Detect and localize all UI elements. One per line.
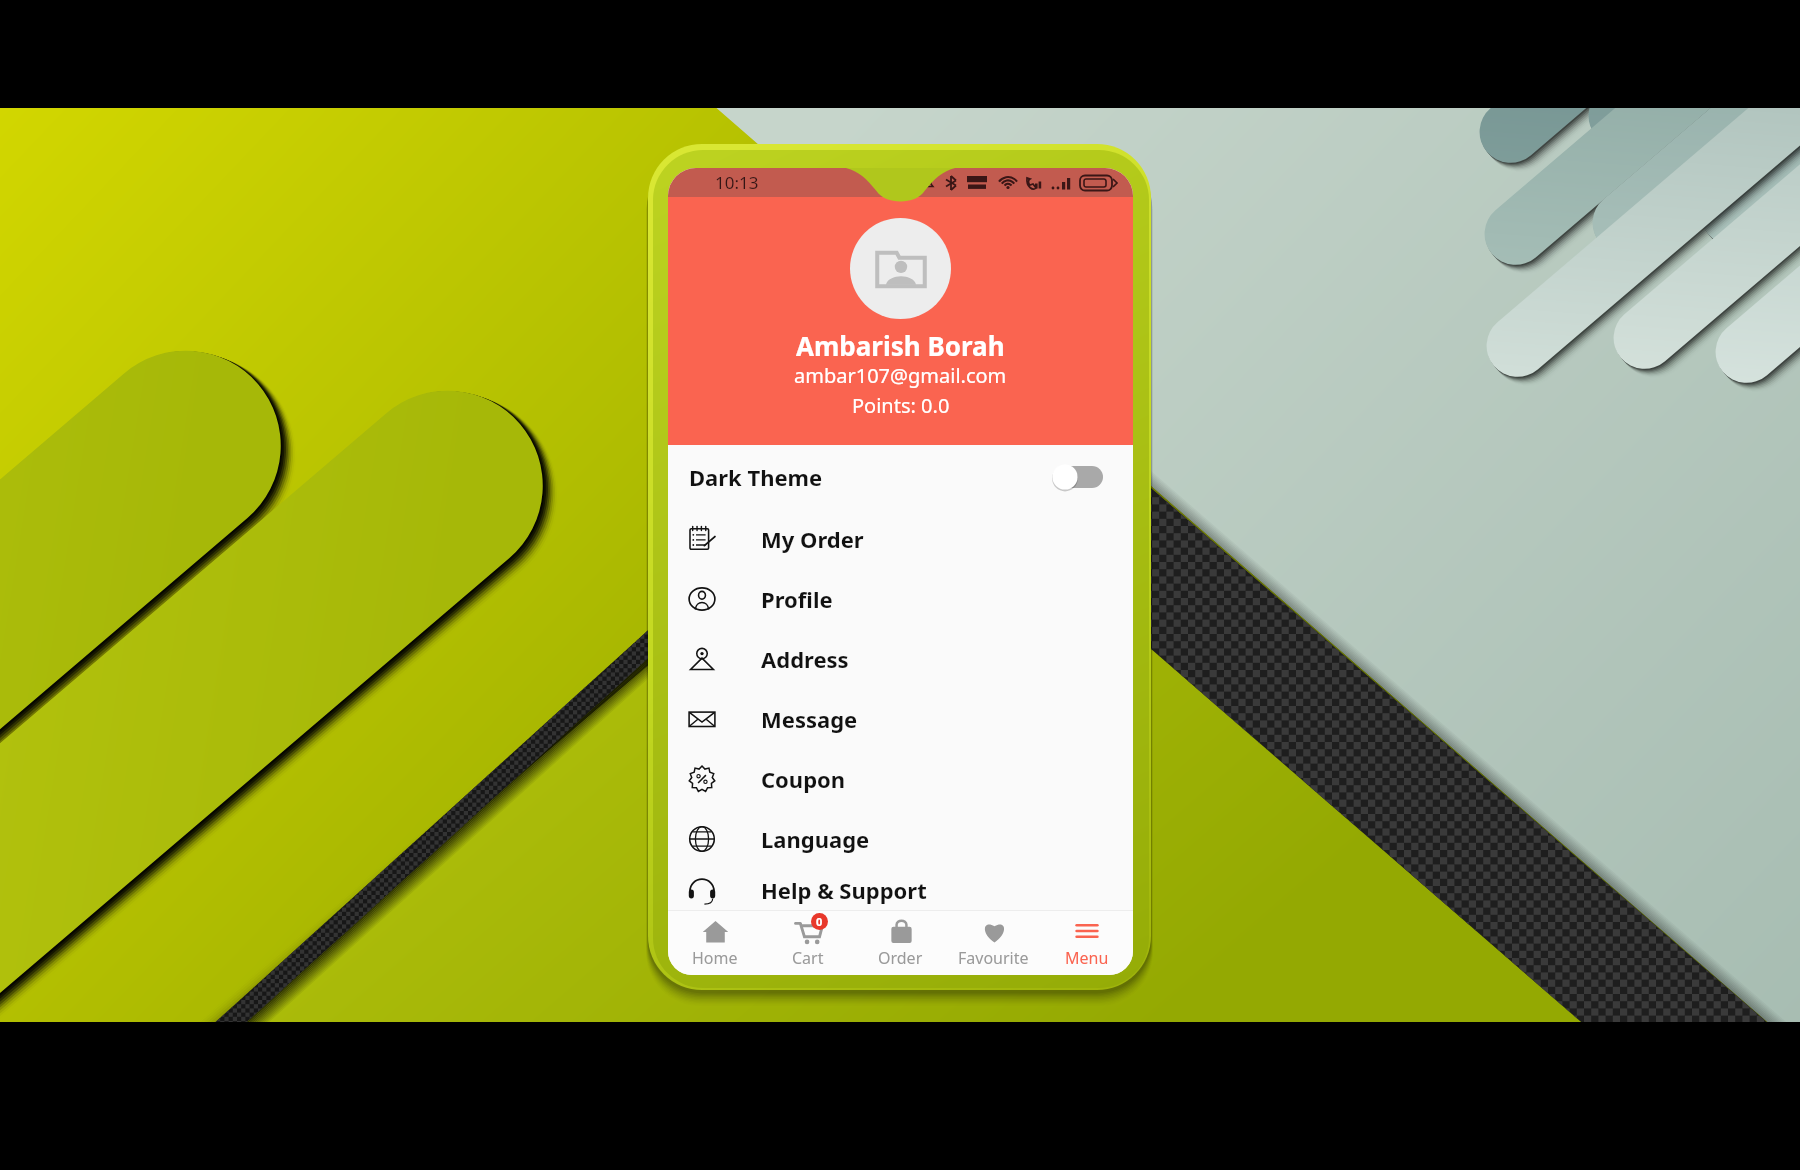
button[interactable]: 0 <box>761 910 854 975</box>
staticText: Cart <box>792 947 824 969</box>
staticText: Language <box>761 824 870 854</box>
staticText: Home <box>692 947 738 969</box>
button[interactable]: Home <box>668 910 761 975</box>
button[interactable]: Language <box>668 809 1133 869</box>
staticText: Points: 0.0 <box>852 392 950 419</box>
staticText: Menu <box>1065 947 1109 969</box>
staticText: 10:13 <box>715 171 759 194</box>
staticText: Order <box>878 947 923 969</box>
staticText: Message <box>761 704 858 734</box>
button[interactable]: Dark Theme <box>668 445 1133 509</box>
button[interactable]: Order <box>854 910 947 975</box>
button[interactable]: Profile <box>668 569 1133 629</box>
staticText: Dark Theme <box>689 462 823 492</box>
staticText: Coupon <box>761 764 846 794</box>
button[interactable]: Help & Support <box>668 869 1133 910</box>
staticText: Ambarish Borah <box>796 328 1005 363</box>
staticText: Profile <box>761 584 833 614</box>
button[interactable]: Profile picture <box>850 218 951 319</box>
button[interactable]: My Order <box>668 509 1133 569</box>
button[interactable]: Menu <box>1040 910 1133 975</box>
staticText: 0 <box>816 914 823 929</box>
button[interactable]: Coupon <box>668 749 1133 809</box>
staticText: ambar107@gmail.com <box>794 362 1007 389</box>
button[interactable]: Message <box>668 689 1133 749</box>
button[interactable]: Favourite <box>947 910 1040 975</box>
button[interactable]: Address <box>668 629 1133 689</box>
staticText: Help & Support <box>761 875 927 905</box>
staticText: Address <box>761 644 849 674</box>
staticText: Favourite <box>958 947 1029 969</box>
staticText: My Order <box>761 524 864 554</box>
button[interactable]: Dark Theme toggle, off <box>1051 463 1103 491</box>
